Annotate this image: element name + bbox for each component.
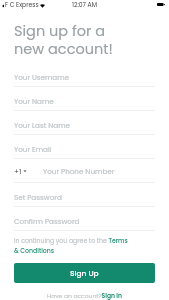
button[interactable]: Your Email: [14, 135, 155, 159]
staticText: Confirm Password: [14, 216, 80, 226]
staticText: In continuing you agree to the Terms & C…: [14, 236, 128, 255]
staticText: Your Last Name: [14, 120, 71, 130]
staticText: Set Password: [14, 192, 62, 202]
staticText: Your Username: [14, 72, 70, 82]
button[interactable]: Set Password: [14, 183, 155, 207]
button[interactable]: Confirm Password: [14, 207, 155, 231]
button[interactable]: Your Username: [14, 63, 155, 87]
staticText: F C Express: [5, 1, 39, 10]
button[interactable]: Your Name: [14, 87, 155, 111]
staticText: Your Name: [14, 96, 54, 106]
button[interactable]: Have an account?Sign In: [0, 292, 169, 300]
staticText: Your Phone Number: [43, 166, 115, 176]
staticText: Sign Up: [70, 268, 99, 278]
staticText: +1: [14, 166, 22, 176]
button[interactable]: In continuing you agree to the Terms & C…: [14, 236, 128, 255]
staticText: 12:07 AM: [72, 1, 97, 10]
button[interactable]: Your Last Name: [14, 111, 155, 135]
staticText: Sign up for a new account!: [14, 21, 113, 59]
button[interactable]: Select country code: [14, 166, 27, 176]
staticText: Your Email: [14, 144, 52, 154]
staticText: Have an account?Sign In: [47, 292, 123, 300]
button[interactable]: Sign Up: [14, 263, 155, 283]
